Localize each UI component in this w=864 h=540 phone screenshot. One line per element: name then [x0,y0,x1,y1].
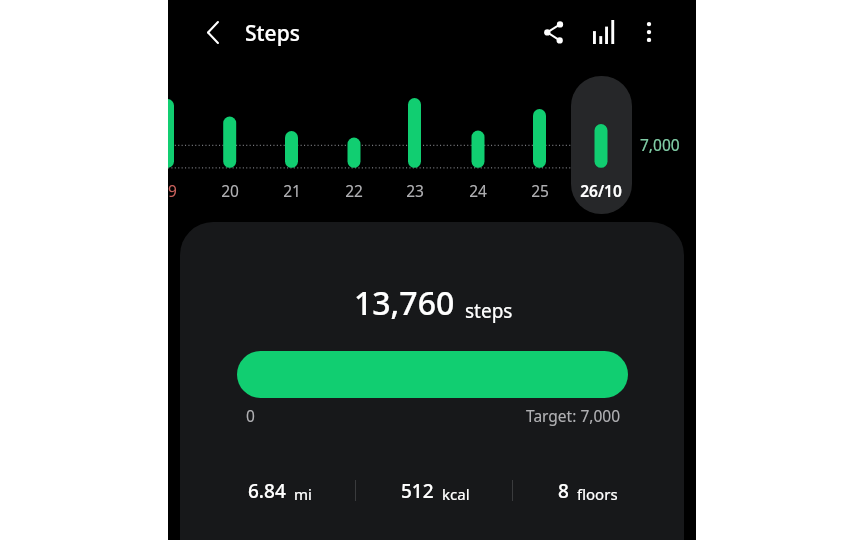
staticText: 13,760 [354,281,455,325]
button[interactable]: Step goal progress [237,351,628,398]
staticText: Steps [245,19,300,48]
button[interactable]: 26/10 selected [571,76,632,214]
staticText: 25 [500,180,580,201]
staticText: 26/10 [561,180,641,201]
staticText: 0 [246,405,255,426]
staticText: floors [577,484,618,504]
staticText: 20 [190,180,270,201]
staticText: 8 [558,478,569,504]
staticText: steps [465,298,513,324]
button[interactable]: 512 [359,472,511,504]
button[interactable]: Chart view [584,12,624,52]
staticText: 512 [401,478,434,504]
staticText: 6.84 [248,478,286,504]
staticText: kcal [442,484,470,504]
button[interactable]: Back [193,12,233,52]
staticText: Target: 7,000 [420,405,620,426]
button[interactable]: More options [629,12,669,52]
staticText: mi [294,484,312,504]
staticText: 7,000 [640,134,680,155]
staticText: 23 [375,180,455,201]
staticText: 21 [252,180,332,201]
staticText: 24 [438,180,518,201]
staticText: 19 [168,180,208,201]
button[interactable]: Share [533,12,573,52]
button[interactable]: 8 [512,472,664,504]
button[interactable]: 6.84 [204,472,356,504]
staticText: 22 [314,180,394,201]
